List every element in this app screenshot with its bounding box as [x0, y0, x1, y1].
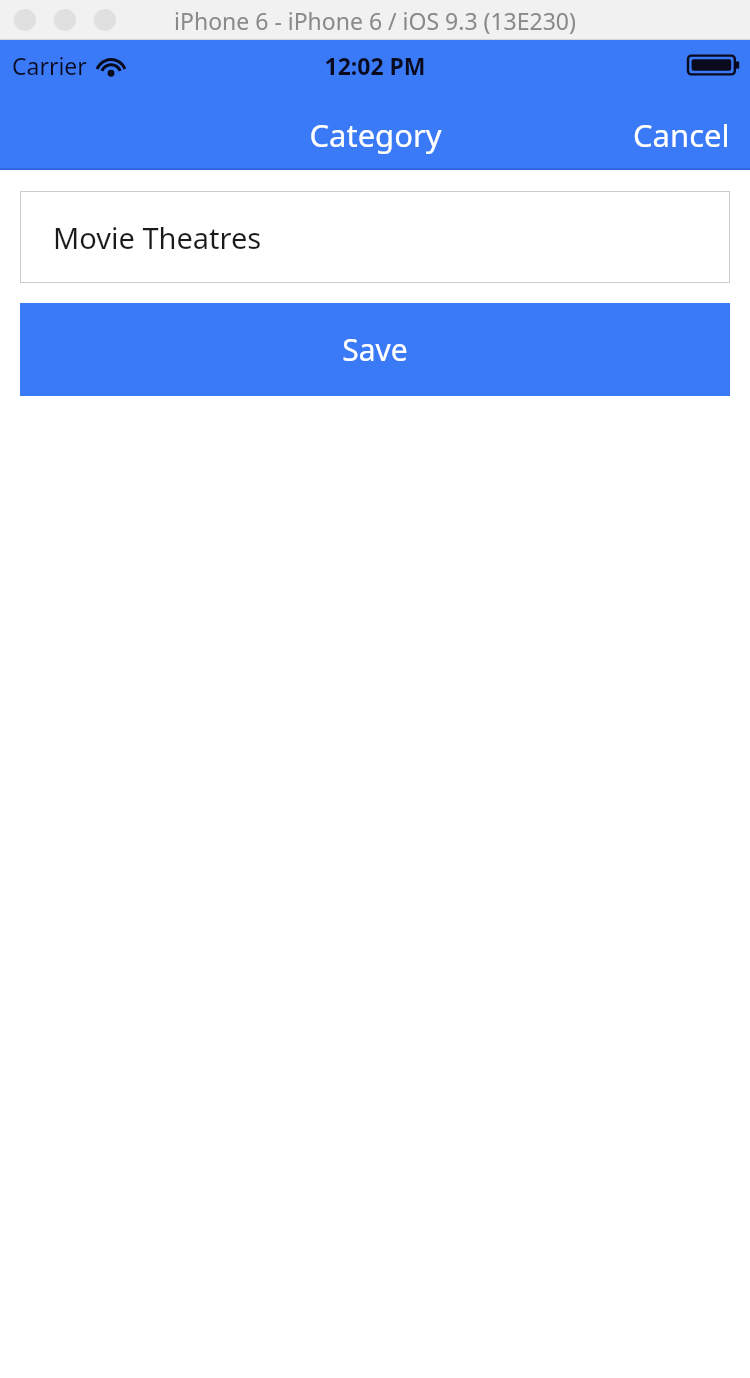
staticText: 12:02 PM [324, 50, 426, 81]
staticText: Carrier [12, 50, 87, 81]
button[interactable]: Cancel [613, 102, 750, 168]
staticText: iPhone 6 - iPhone 6 / iOS 9.3 (13E230) [174, 5, 576, 36]
staticText: Save [342, 329, 408, 370]
staticText: Category [309, 114, 442, 156]
other: Battery full [688, 53, 740, 77]
button[interactable]: Save [20, 303, 730, 396]
staticText: Movie Theatres [53, 218, 262, 257]
button[interactable]: Movie Theatres [20, 191, 730, 283]
staticText: Cancel [633, 114, 730, 156]
other: Wi-Fi signal [96, 54, 126, 78]
